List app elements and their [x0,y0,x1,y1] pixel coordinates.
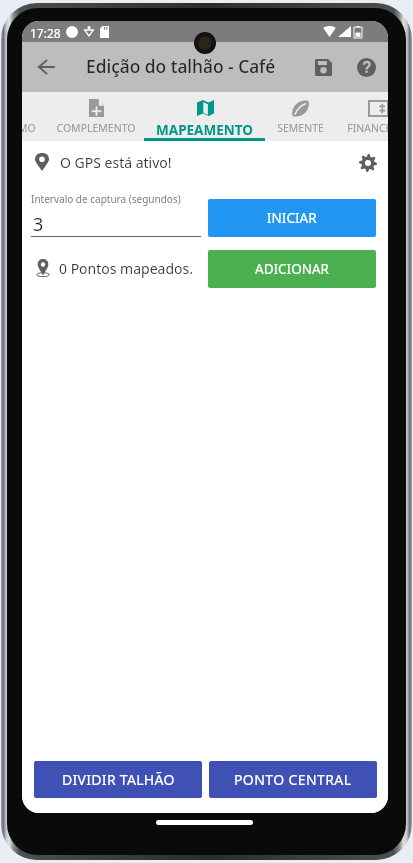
staticText: RESUMO [22,121,36,135]
button[interactable]: Help [344,45,388,89]
button[interactable]: RESUMO [22,92,59,141]
button[interactable]: FINANCEIRO [330,92,388,141]
staticText: INICIAR [267,209,317,227]
staticText: FINANCEIRO [347,121,388,135]
button[interactable]: SEMENTE [265,92,335,141]
staticText: Intervalo de captura (segundos) [31,192,181,206]
staticText: COMPLEMENTO [56,121,136,135]
button[interactable]: 0 Pontos mapeados. [22,253,388,283]
staticText: 3 [33,212,44,237]
staticText: 17:28 [30,25,61,41]
staticText: MAPEAMENTO [156,121,253,139]
button[interactable]: O GPS está ativo! [22,147,388,177]
staticText: SEMENTE [277,121,324,135]
button[interactable]: Settings [346,141,388,185]
staticText: 0 Pontos mapeados. [59,259,193,278]
button[interactable]: PONTO CENTRAL [209,761,377,798]
button[interactable]: DIVIDIR TALHÃO [34,761,202,798]
button[interactable]: Back [24,45,68,89]
button[interactable]: COMPLEMENTO [48,92,144,141]
button[interactable]: Save [301,45,345,89]
staticText: ADICIONAR [255,260,329,278]
button[interactable]: INICIAR [208,199,376,237]
staticText: PONTO CENTRAL [234,770,352,789]
staticText: DIVIDIR TALHÃO [62,770,175,789]
staticText: Edição do talhão - Café [86,54,276,78]
button[interactable]: ADICIONAR [208,250,376,288]
staticText: O GPS está ativo! [60,153,172,172]
button[interactable]: MAPEAMENTO [144,92,265,141]
